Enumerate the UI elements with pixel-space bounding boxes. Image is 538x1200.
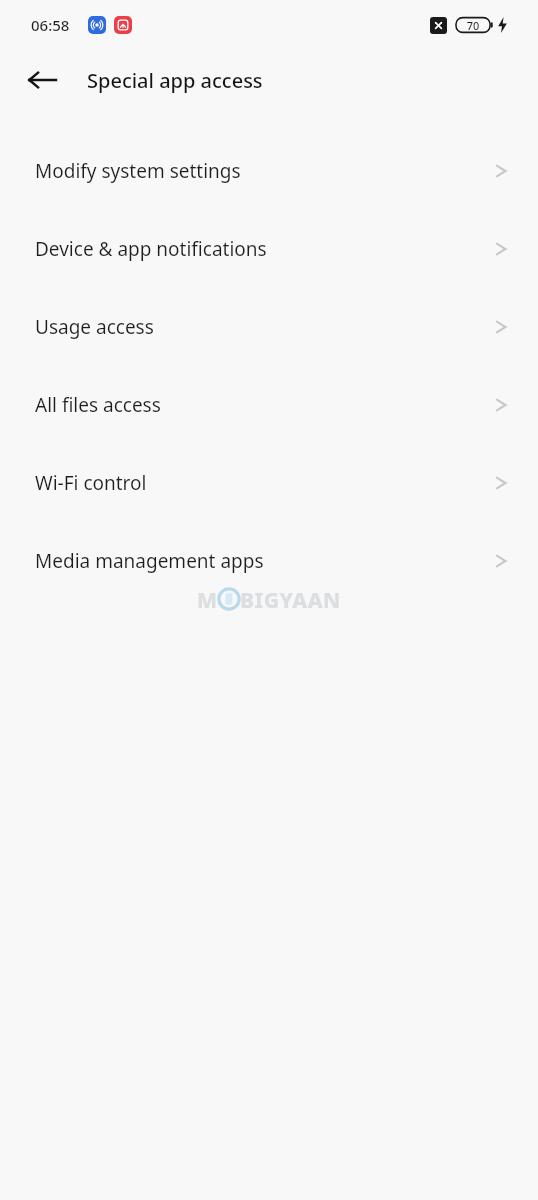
staticText: Media management apps xyxy=(35,548,494,574)
staticText: 70 xyxy=(456,18,490,33)
button[interactable]: Wi-Fi control xyxy=(0,444,538,522)
staticText: 06:58 xyxy=(31,15,70,35)
staticText: Usage access xyxy=(35,314,494,340)
staticText: Modify system settings xyxy=(35,158,494,184)
button[interactable]: All files access xyxy=(0,366,538,444)
staticText: BIGYAAN xyxy=(240,586,341,612)
staticText: All files access xyxy=(35,392,494,418)
staticText: Wi-Fi control xyxy=(35,470,494,496)
button[interactable]: Back xyxy=(21,59,63,101)
button[interactable]: Usage access xyxy=(0,288,538,366)
staticText: Special app access xyxy=(87,67,263,94)
staticText: Device & app notifications xyxy=(35,236,494,262)
staticText: M xyxy=(197,586,218,612)
button[interactable]: Modify system settings xyxy=(0,132,538,210)
button[interactable]: Media management apps xyxy=(0,522,538,600)
button[interactable]: Device & app notifications xyxy=(0,210,538,288)
